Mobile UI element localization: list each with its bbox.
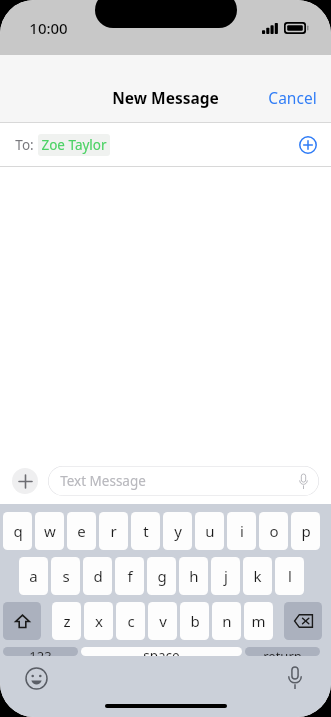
staticText: b (190, 611, 200, 631)
button[interactable]: return (245, 647, 320, 656)
button[interactable]: Attach (12, 468, 38, 494)
button[interactable]: a (19, 557, 48, 595)
staticText: o (269, 521, 279, 541)
staticText: t (143, 521, 149, 541)
button[interactable]: b (180, 602, 209, 640)
button[interactable]: u (195, 512, 224, 550)
button[interactable]: x (84, 602, 113, 640)
staticText: x (95, 611, 103, 631)
button[interactable]: 123 (3, 647, 78, 656)
staticText: To: (15, 136, 34, 154)
staticText: g (157, 566, 167, 586)
button[interactable]: g (147, 557, 176, 595)
button[interactable]: To: (0, 123, 331, 166)
button[interactable]: h (179, 557, 208, 595)
staticText: r (110, 521, 117, 541)
staticText: v (159, 611, 167, 631)
button[interactable]: Add contact (296, 133, 320, 157)
button[interactable]: y (163, 512, 192, 550)
button[interactable]: r (99, 512, 128, 550)
button[interactable]: w (35, 512, 64, 550)
staticText: c (127, 611, 135, 631)
button[interactable]: Text Message (48, 466, 319, 496)
button[interactable]: o (259, 512, 288, 550)
staticText: d (93, 566, 103, 586)
button[interactable]: j (211, 557, 240, 595)
button[interactable]: v (148, 602, 177, 640)
staticText: y (174, 521, 182, 541)
button[interactable]: Backspace (284, 602, 322, 640)
button[interactable]: p (291, 512, 320, 550)
staticText: a (29, 566, 38, 586)
staticText: z (63, 611, 71, 631)
button[interactable]: i (227, 512, 256, 550)
staticText: q (13, 521, 23, 541)
staticText: return (263, 647, 302, 656)
button[interactable]: c (116, 602, 145, 640)
button[interactable]: Cancel (254, 81, 331, 114)
button[interactable]: k (243, 557, 272, 595)
button[interactable]: f (115, 557, 144, 595)
button[interactable]: q (3, 512, 32, 550)
button[interactable]: Shift (3, 602, 41, 640)
button[interactable]: l (275, 557, 304, 595)
staticText: New Message (112, 87, 219, 108)
staticText: m (251, 611, 266, 631)
button[interactable]: Dictation (281, 664, 309, 692)
staticText: s (62, 566, 70, 586)
button[interactable]: d (83, 557, 112, 595)
button[interactable]: s (51, 557, 80, 595)
staticText: j (224, 566, 228, 586)
staticText: i (240, 521, 244, 541)
staticText: l (288, 566, 292, 586)
staticText: k (253, 566, 262, 586)
staticText: Cancel (268, 87, 317, 108)
button[interactable]: m (244, 602, 273, 640)
button[interactable]: n (212, 602, 241, 640)
staticText: space (143, 647, 180, 656)
staticText: h (189, 566, 199, 586)
button[interactable]: Emoji (22, 664, 50, 692)
button[interactable]: t (131, 512, 160, 550)
staticText: n (222, 611, 232, 631)
button[interactable]: space (81, 647, 242, 656)
staticText: Zoe Taylor (41, 136, 107, 154)
staticText: p (301, 521, 311, 541)
button[interactable]: z (52, 602, 81, 640)
staticText: w (44, 521, 56, 541)
staticText: u (205, 521, 215, 541)
staticText: f (127, 566, 133, 586)
staticText: 10:00 (29, 18, 68, 38)
staticText: e (77, 521, 86, 541)
button[interactable]: e (67, 512, 96, 550)
staticText: 123 (29, 647, 52, 656)
staticText: Text Message (60, 472, 146, 490)
